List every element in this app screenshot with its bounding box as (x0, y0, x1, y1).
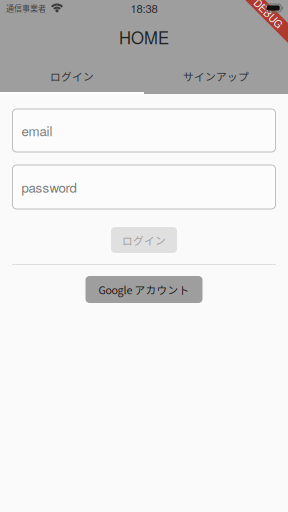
staticText: Google アカウント (98, 282, 189, 297)
staticText: DEBUG (250, 6, 286, 21)
button[interactable]: サインアップ (144, 65, 288, 87)
button[interactable]: ログイン (111, 227, 177, 253)
staticText: ログイン (50, 68, 94, 84)
staticText: 通信事業者 (6, 2, 46, 14)
staticText: ログイン (122, 232, 166, 248)
staticText: HOME (119, 25, 169, 49)
staticText: password (21, 177, 76, 197)
staticText: 18:38 (130, 0, 157, 16)
staticText: サインアップ (183, 68, 249, 84)
staticText: email (21, 121, 52, 140)
button[interactable]: ログイン (0, 65, 144, 87)
button[interactable]: Google アカウント (85, 276, 202, 303)
